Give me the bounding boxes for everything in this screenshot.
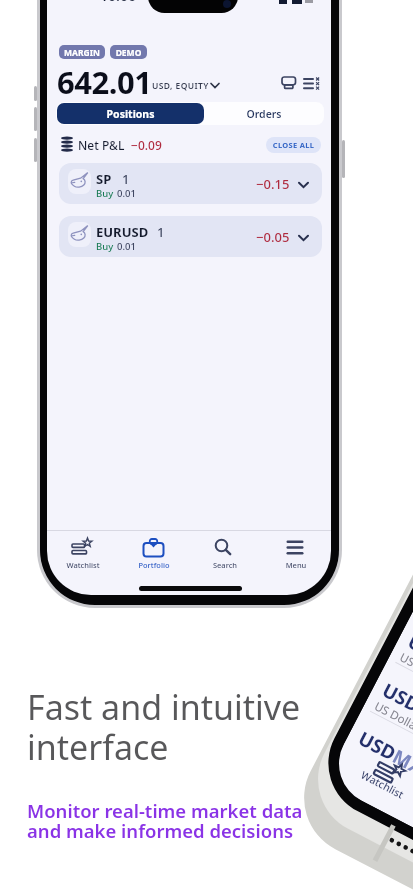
staticText: USD, EQUITY — [152, 80, 209, 92]
staticText: DEMO — [110, 47, 147, 59]
staticText: −0.05 — [256, 228, 290, 246]
staticText: 10:06 — [100, 0, 136, 5]
staticText: Fast and intuitive interface — [27, 684, 301, 770]
staticText: USDSEK — [378, 677, 413, 734]
staticText: 642.01 — [57, 61, 152, 103]
staticText: 1 — [157, 223, 165, 241]
button[interactable]: Watchlist — [53, 534, 113, 574]
button[interactable]: DEMO — [110, 45, 147, 59]
staticText: Positions — [57, 107, 204, 122]
staticText: Menu — [266, 560, 326, 572]
button[interactable] — [59, 216, 322, 257]
staticText: Watchlist — [353, 765, 412, 805]
staticText: 1 — [122, 170, 130, 188]
staticText: EURUSD — [96, 223, 149, 241]
staticText: USDPLN — [403, 628, 413, 687]
button[interactable]: MARGIN — [59, 45, 105, 59]
staticText: Buy — [96, 240, 114, 253]
button[interactable] — [59, 163, 322, 204]
staticText: Buy — [96, 187, 114, 200]
staticText: Net P&L — [78, 137, 125, 153]
button[interactable] — [303, 77, 320, 89]
staticText: Watchlist — [53, 560, 113, 572]
staticText: US Dollar vs Swedish Krona — [372, 698, 413, 781]
button[interactable]: Positions — [57, 103, 204, 124]
staticText: US Dollar vs Polish Zloty — [397, 649, 413, 724]
button[interactable]: CLOSE ALL — [266, 137, 321, 153]
button[interactable]: Orders — [204, 103, 324, 124]
button[interactable]: Search — [195, 534, 255, 574]
staticText: −0.09 — [131, 137, 162, 153]
button[interactable]: Portfolio — [124, 534, 184, 574]
button[interactable] — [282, 77, 296, 89]
staticText: Orders — [204, 107, 324, 122]
staticText: 0.01 — [117, 187, 136, 200]
staticText: 0.01 — [117, 240, 136, 253]
staticText: SP — [96, 170, 112, 188]
staticText: CLOSE ALL — [266, 140, 321, 151]
button[interactable]: Menu — [266, 534, 326, 574]
staticText: Search — [195, 560, 255, 572]
staticText: MARGIN — [59, 47, 105, 59]
staticText: USDMXN — [354, 725, 413, 788]
staticText: Portfolio — [124, 560, 184, 572]
staticText: Monitor real-time market data and make i… — [27, 798, 303, 843]
staticText: −0.15 — [256, 175, 290, 193]
